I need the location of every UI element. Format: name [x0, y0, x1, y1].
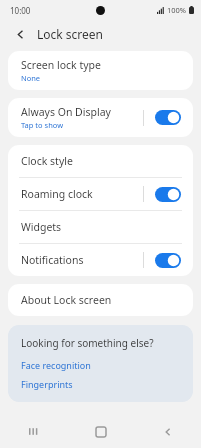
staticText: Lock screen — [37, 26, 104, 42]
staticText: Clock style — [21, 154, 73, 168]
staticText: 100% — [167, 5, 187, 15]
button[interactable]: Always On Display — [8, 98, 193, 137]
button[interactable]: Widgets — [8, 211, 193, 243]
button[interactable]: Back — [134, 415, 201, 448]
button[interactable]: About Lock screen — [8, 284, 193, 316]
button[interactable]: Recents — [0, 415, 67, 448]
staticText: Face recognition — [21, 359, 91, 371]
button[interactable]: Always On Display — [153, 108, 183, 127]
button[interactable]: Roaming clock — [153, 185, 183, 204]
button[interactable]: Notifications — [8, 244, 193, 276]
staticText: Tap to show — [21, 120, 64, 130]
staticText: Fingerprints — [21, 378, 73, 390]
staticText: 10:00 — [10, 5, 31, 16]
button[interactable]: Face recognition — [21, 359, 91, 371]
staticText: Looking for something else? — [21, 336, 154, 350]
button[interactable]: Home — [67, 415, 134, 448]
button[interactable]: Notifications — [153, 251, 183, 270]
button[interactable]: Back — [10, 24, 30, 44]
staticText: Screen lock type — [21, 58, 101, 72]
button[interactable]: Roaming clock — [8, 178, 193, 210]
button[interactable]: Clock style — [8, 145, 193, 177]
staticText: Roaming clock — [21, 187, 93, 201]
button[interactable]: Screen lock type — [8, 51, 193, 90]
staticText: Notifications — [21, 253, 84, 267]
staticText: Always On Display — [21, 105, 111, 119]
button[interactable]: Fingerprints — [21, 378, 73, 390]
staticText: About Lock screen — [21, 293, 112, 307]
staticText: None — [21, 73, 41, 83]
staticText: Widgets — [21, 220, 62, 234]
